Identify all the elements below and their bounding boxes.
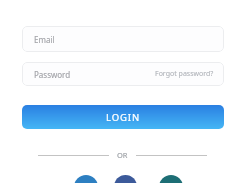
button[interactable] (74, 175, 98, 183)
staticText: OR (117, 150, 128, 160)
button[interactable] (114, 175, 137, 183)
staticText: Password (34, 69, 71, 80)
button[interactable]: LOGIN (22, 105, 224, 129)
staticText: LOGIN (106, 111, 141, 124)
button[interactable] (159, 175, 183, 183)
staticText: Email (34, 34, 55, 45)
button[interactable]: Forgot password? (155, 69, 214, 79)
button[interactable]: Email (22, 26, 224, 52)
button[interactable]: Password (22, 62, 224, 86)
